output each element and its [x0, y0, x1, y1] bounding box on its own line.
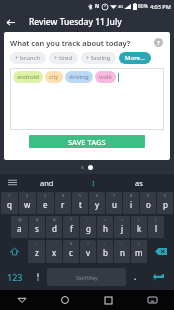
staticText: x [52, 247, 57, 258]
staticText: i [130, 199, 133, 210]
staticText: 4:03 PM [150, 3, 171, 10]
staticText: 0 [164, 193, 167, 198]
staticText: ` [53, 241, 55, 246]
staticText: h [103, 223, 108, 234]
button[interactable]: ( [131, 216, 147, 238]
staticText: / [138, 241, 140, 246]
staticText: p [163, 199, 168, 210]
button[interactable]: Space [47, 268, 126, 286]
button[interactable]: - [80, 216, 96, 238]
button[interactable]: Backspace [148, 239, 173, 264]
button[interactable]: # [29, 216, 45, 238]
staticText: + tired [54, 54, 73, 62]
button[interactable]: Recents [86, 290, 130, 310]
staticText: d [52, 223, 57, 234]
staticText: 4 [62, 193, 65, 198]
staticText: u [112, 199, 117, 210]
button[interactable]: + [97, 216, 113, 238]
button[interactable]: 8 [123, 192, 139, 214]
staticText: SwiftKey [76, 274, 98, 281]
button[interactable]: § [63, 240, 79, 263]
button[interactable]: 6 [89, 192, 105, 214]
button[interactable]: Switch keyboard [130, 290, 174, 310]
staticText: f [70, 223, 73, 234]
staticText: l [155, 223, 158, 234]
staticText: & [53, 217, 56, 222]
button[interactable]: city [45, 71, 63, 83]
button[interactable]: ~ [28, 240, 45, 263]
button[interactable]: Back [0, 12, 20, 32]
staticText: 5 [79, 193, 82, 198]
staticText: ^ [87, 241, 90, 246]
button[interactable]: Enter [144, 264, 173, 289]
button[interactable]: ; [114, 240, 130, 263]
staticText: 9 [147, 193, 150, 198]
staticText: a [17, 223, 22, 234]
staticText: g [86, 223, 91, 234]
staticText: ? [157, 39, 160, 47]
button[interactable]: : [97, 240, 113, 263]
staticText: w [24, 199, 31, 210]
staticText: b [103, 247, 108, 258]
button[interactable]: + tired [49, 52, 78, 64]
staticText: 123 [7, 271, 23, 283]
button[interactable]: . [127, 264, 143, 289]
button[interactable]: and [24, 174, 70, 191]
button[interactable]: * [63, 216, 79, 238]
staticText: ~ [35, 241, 38, 246]
staticText: q [7, 199, 12, 210]
button[interactable]: as [116, 174, 162, 191]
staticText: + [104, 217, 107, 222]
staticText: 4G [118, 4, 124, 9]
staticText: § [70, 241, 73, 246]
button[interactable]: android [13, 71, 43, 83]
button[interactable]: 4 [55, 192, 71, 214]
button[interactable]: + fasting [81, 52, 116, 64]
button[interactable]: ) [148, 216, 164, 238]
button[interactable]: Voice input [30, 264, 46, 289]
button[interactable]: 2 [19, 192, 36, 214]
button[interactable]: 123 [1, 264, 29, 289]
button[interactable]: @ [11, 216, 28, 238]
button[interactable]: 0 [157, 192, 173, 214]
staticText: t [79, 199, 82, 210]
staticText: + fasting [86, 54, 111, 62]
staticText: * [70, 217, 73, 222]
button[interactable]: Help [153, 37, 164, 48]
staticText: = [121, 217, 124, 222]
button[interactable]: driving [65, 71, 93, 83]
button[interactable]: = [114, 216, 130, 238]
button[interactable]: I [70, 174, 116, 191]
staticText: N [95, 3, 100, 10]
button[interactable]: 7 [106, 192, 122, 214]
staticText: ) [155, 217, 157, 222]
staticText: e [43, 199, 48, 210]
staticText: as [135, 178, 143, 188]
staticText: I [92, 178, 95, 188]
button[interactable]: + brunch [10, 52, 46, 64]
staticText: SAVE TAGS [68, 137, 106, 147]
staticText: r [61, 199, 65, 210]
button[interactable]: 9 [140, 192, 156, 214]
button[interactable]: Shift [1, 239, 27, 264]
staticText: s [35, 223, 39, 234]
button[interactable]: More… [119, 52, 151, 64]
button[interactable]: android [10, 68, 164, 130]
staticText: Review Tuesday 11 July [29, 16, 122, 28]
staticText: 3 [44, 193, 47, 198]
button[interactable]: Keyboard menu [0, 174, 24, 191]
button[interactable]: 1 [1, 192, 18, 214]
button[interactable]: ` [46, 240, 62, 263]
button[interactable]: ^ [80, 240, 96, 263]
button[interactable]: / [131, 240, 147, 263]
button[interactable]: Home [43, 290, 86, 310]
button[interactable]: 5 [72, 192, 88, 214]
button[interactable]: walk [95, 71, 116, 83]
staticText: 2 [26, 193, 29, 198]
button[interactable]: Back [0, 290, 43, 310]
button[interactable]: & [46, 216, 62, 238]
staticText: v [86, 247, 91, 258]
staticText: j [121, 223, 124, 234]
button[interactable]: SAVE TAGS [29, 135, 145, 148]
button[interactable]: 3 [37, 192, 54, 214]
